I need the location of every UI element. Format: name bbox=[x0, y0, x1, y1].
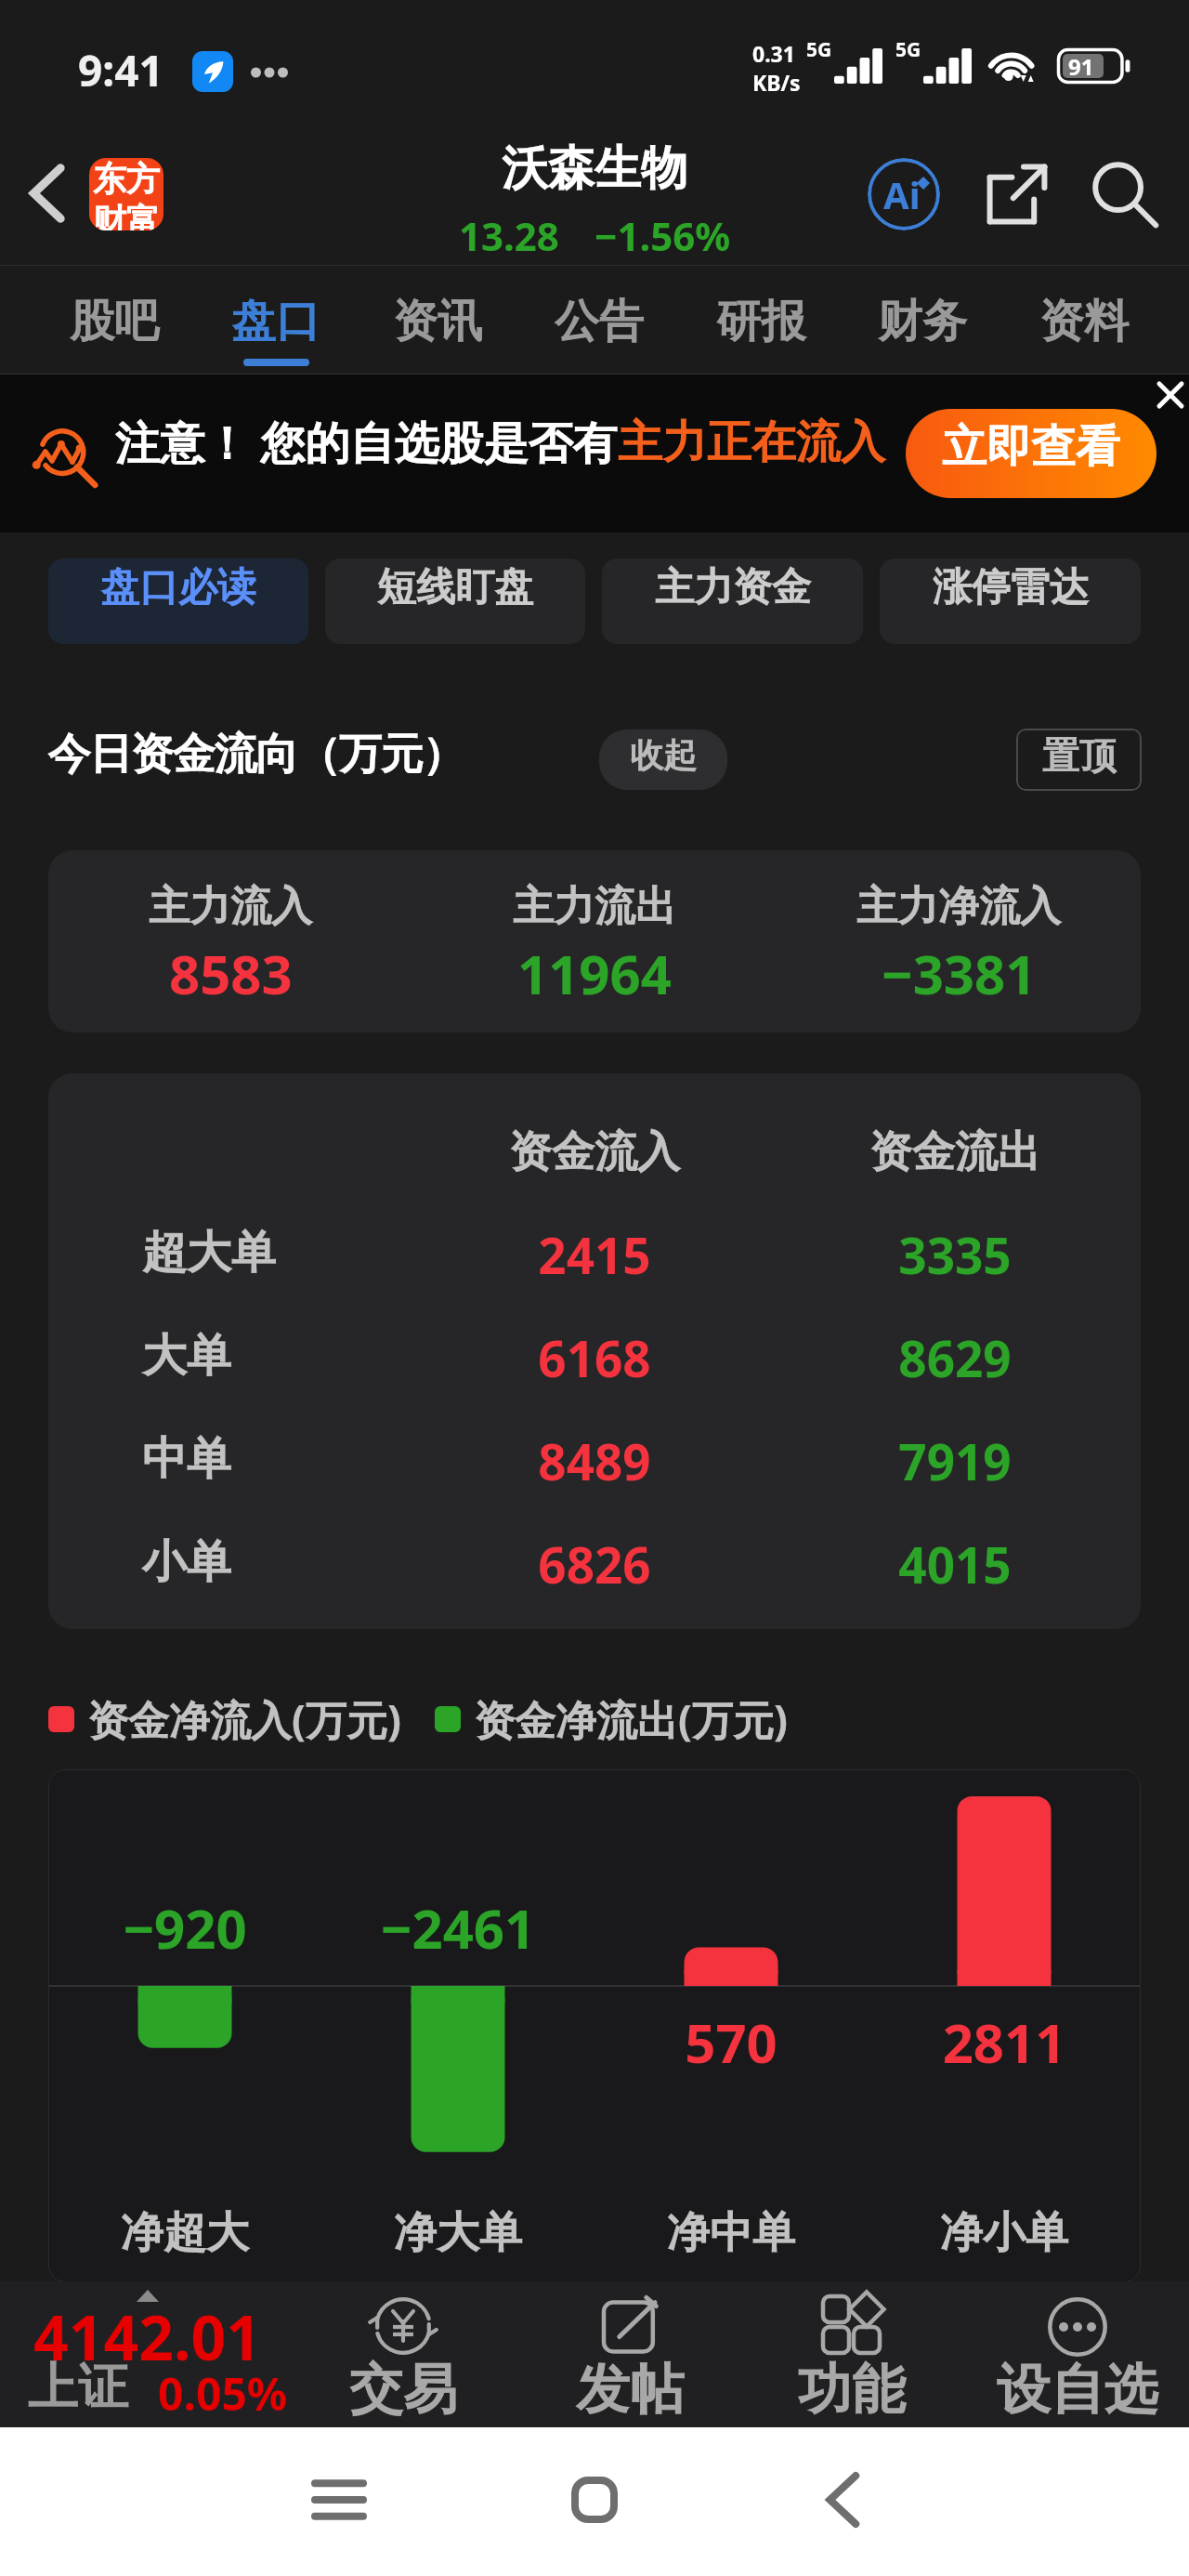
button[interactable]: 设自选 bbox=[975, 2281, 1180, 2427]
staticText: 资料 bbox=[1039, 294, 1129, 349]
staticText: 小单 bbox=[142, 1534, 231, 1590]
staticText: 资金净流入(万元) bbox=[87, 1691, 401, 1747]
staticText: 功能 bbox=[798, 2356, 906, 2424]
staticText: 净中单 bbox=[594, 2206, 868, 2260]
staticText: 研报 bbox=[716, 294, 805, 349]
staticText: 8583 bbox=[169, 937, 293, 1010]
staticText: 置顶 bbox=[1042, 732, 1117, 779]
button[interactable]: 功能 bbox=[750, 2281, 954, 2427]
staticText: −3381 bbox=[882, 937, 1037, 1010]
staticText: 91 bbox=[1068, 51, 1094, 82]
staticText: 交易 bbox=[349, 2356, 457, 2424]
staticText: 8489 bbox=[420, 1427, 769, 1494]
staticText: KB/s bbox=[752, 68, 801, 97]
staticText: 0.05% bbox=[158, 2363, 288, 2424]
staticText: 主力流出 bbox=[513, 881, 676, 932]
button[interactable]: 立即查看 bbox=[906, 409, 1156, 498]
staticText: 公告 bbox=[555, 294, 644, 349]
staticText: 主力流入 bbox=[149, 881, 312, 932]
staticText: 主力资金 bbox=[655, 563, 811, 612]
staticText: 资金净流出(万元) bbox=[474, 1691, 788, 1747]
staticText: 注意！ 您的自选股是否有 bbox=[115, 412, 618, 473]
staticText: 超大单 bbox=[142, 1225, 276, 1281]
staticText: 3335 bbox=[780, 1221, 1130, 1288]
button[interactable]: Search bbox=[1087, 156, 1163, 232]
button[interactable]: Home bbox=[543, 2449, 646, 2551]
button[interactable]: 短线盯盘 bbox=[325, 559, 585, 644]
button[interactable]: 涨停雷达 bbox=[880, 559, 1141, 644]
button[interactable]: 公告 bbox=[549, 266, 649, 375]
staticText: 6168 bbox=[420, 1324, 769, 1391]
staticText: −2461 bbox=[321, 1891, 594, 1965]
button[interactable]: Share bbox=[979, 156, 1055, 232]
button[interactable]: AI assistant bbox=[866, 156, 942, 232]
staticText: 短线盯盘 bbox=[377, 563, 533, 612]
staticText: 主力净流入 bbox=[856, 881, 1061, 932]
staticText: 11964 bbox=[517, 937, 672, 1010]
staticText: 0.31 bbox=[752, 39, 795, 68]
staticText: Ai bbox=[883, 169, 921, 219]
staticText: 涨停雷达 bbox=[933, 563, 1089, 612]
button[interactable]: 交易 bbox=[301, 2281, 505, 2427]
button[interactable]: 研报 bbox=[711, 266, 811, 375]
button[interactable]: Recent apps bbox=[288, 2449, 390, 2551]
staticText: 沃森生物 bbox=[502, 139, 687, 198]
staticText: 盘口必读 bbox=[100, 563, 256, 612]
staticText: 财务 bbox=[878, 294, 967, 349]
button[interactable]: 主力资金 bbox=[602, 559, 863, 644]
button[interactable]: 盘口 bbox=[226, 266, 326, 375]
staticText: 收起 bbox=[630, 734, 697, 776]
staticText: 13.28 bbox=[459, 209, 559, 262]
staticText: 今日资金流向（万元） bbox=[48, 728, 464, 782]
button[interactable]: 股吧 bbox=[64, 266, 164, 375]
staticText: 净超大 bbox=[48, 2206, 321, 2260]
button[interactable]: 4142.01 bbox=[9, 2291, 307, 2427]
staticText: 7919 bbox=[780, 1427, 1130, 1494]
staticText: 净大单 bbox=[321, 2206, 594, 2260]
staticText: 净小单 bbox=[868, 2206, 1141, 2260]
staticText: 2811 bbox=[868, 2005, 1141, 2079]
button[interactable]: 财务 bbox=[872, 266, 973, 375]
staticText: 5G bbox=[806, 36, 832, 63]
staticText: 570 bbox=[594, 2005, 868, 2079]
button[interactable]: Back bbox=[791, 2449, 894, 2551]
staticText: 4015 bbox=[780, 1531, 1130, 1597]
staticText: 6826 bbox=[420, 1531, 769, 1597]
staticText: 立即查看 bbox=[942, 419, 1120, 475]
button[interactable]: 发帖 bbox=[528, 2281, 732, 2427]
staticText: 盘口 bbox=[231, 294, 320, 349]
staticText: 主力正在流入 bbox=[618, 414, 885, 470]
staticText: −920 bbox=[48, 1891, 321, 1965]
staticText: 财富 bbox=[93, 200, 160, 230]
staticText: 资讯 bbox=[393, 294, 482, 349]
staticText: 资金流入 bbox=[420, 1125, 769, 1179]
staticText: 中单 bbox=[142, 1431, 231, 1487]
button[interactable]: 东方 bbox=[89, 158, 163, 230]
button[interactable]: 资讯 bbox=[387, 266, 488, 375]
staticText: 5G bbox=[895, 36, 921, 63]
staticText: 发帖 bbox=[576, 2356, 684, 2424]
button[interactable]: 资料 bbox=[1034, 266, 1134, 375]
staticText: 大单 bbox=[142, 1328, 231, 1384]
staticText: 资金流出 bbox=[780, 1125, 1130, 1179]
button[interactable]: 收起 bbox=[599, 729, 727, 790]
button[interactable]: Close banner bbox=[1132, 375, 1189, 430]
staticText: 股吧 bbox=[70, 294, 159, 349]
button[interactable]: 盘口必读 bbox=[48, 559, 308, 644]
staticText: 9:41 bbox=[78, 41, 163, 99]
staticText: 东方 bbox=[93, 158, 160, 200]
staticText: 2415 bbox=[420, 1221, 769, 1288]
staticText: 设自选 bbox=[997, 2356, 1158, 2424]
staticText: 4142.01 bbox=[33, 2294, 262, 2378]
staticText: 上证 bbox=[28, 2356, 128, 2419]
button[interactable]: 置顶 bbox=[1016, 729, 1142, 791]
staticText: −1.56% bbox=[594, 209, 731, 262]
staticText: 8629 bbox=[780, 1324, 1130, 1391]
button[interactable]: Back bbox=[9, 156, 84, 230]
